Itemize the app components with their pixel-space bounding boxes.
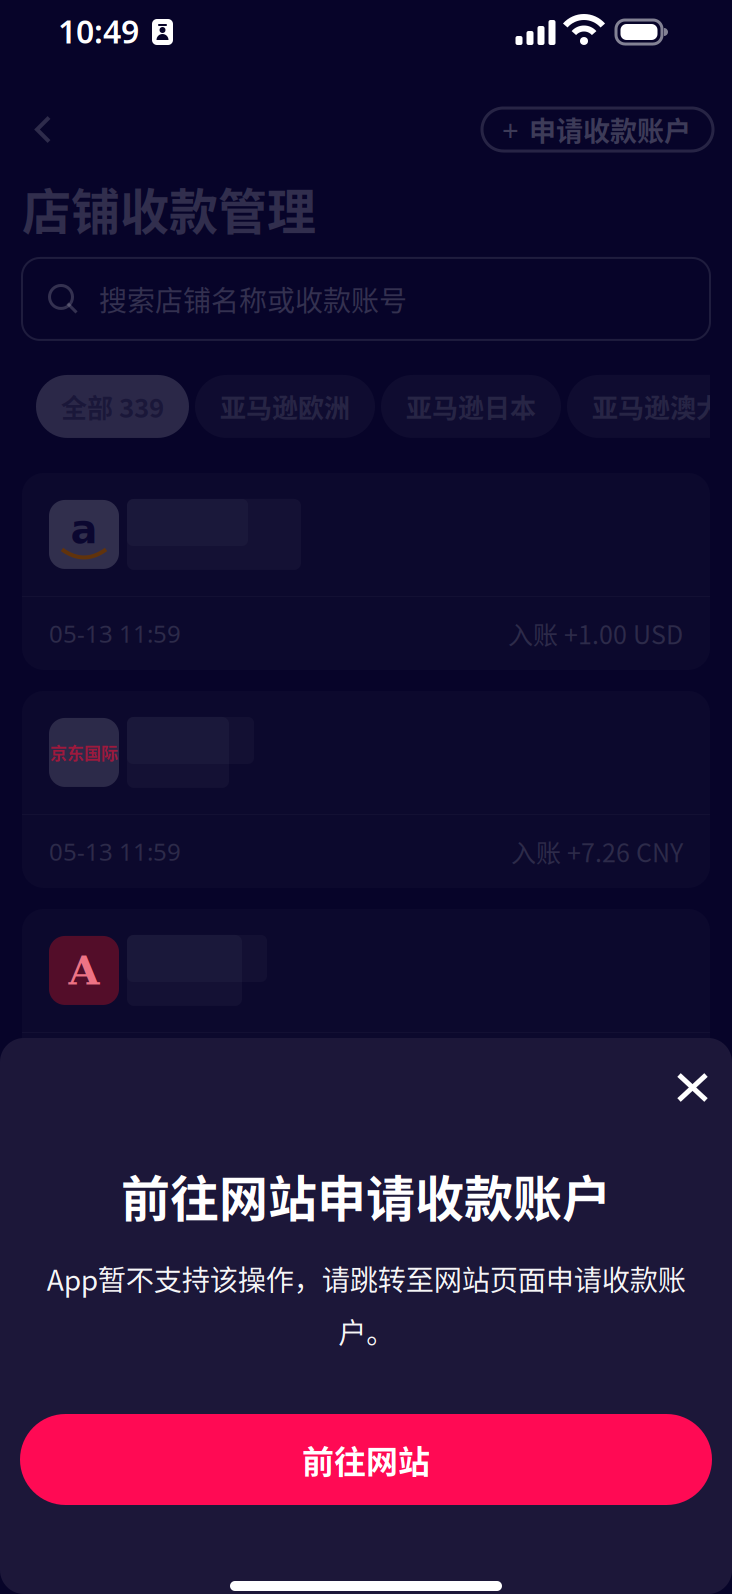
button[interactable]: 前往网站: [20, 1414, 712, 1505]
staticText: 亚马逊日本: [406, 388, 536, 425]
staticText: 入账 +7.26 CNY: [511, 833, 683, 870]
staticText: 前往网站申请收款账户: [121, 1160, 611, 1231]
button[interactable]: 亚马逊澳大利亚: [567, 375, 732, 438]
staticText: 搜索店铺名称或收款账号: [99, 279, 407, 319]
staticText: 05-13 11:59: [49, 617, 181, 649]
staticText: 前往网站: [302, 1436, 430, 1483]
staticText: 全部 339: [61, 388, 164, 425]
staticText: 入账 +0.32 EUR: [509, 1051, 683, 1088]
button[interactable]: Close: [661, 1059, 724, 1116]
staticText: a: [70, 506, 97, 553]
button[interactable]: 亚马逊欧洲: [195, 375, 375, 438]
staticText: 申请收款账户: [529, 110, 691, 149]
staticText: 店铺收款管理: [22, 173, 316, 244]
staticText: 入账 +1.00 USD: [508, 615, 683, 652]
button[interactable]: Back: [22, 108, 68, 151]
button[interactable]: 全部 339: [36, 375, 189, 438]
staticText: 亚马逊欧洲: [220, 388, 350, 425]
staticText: +: [502, 110, 519, 149]
button[interactable]: +: [482, 108, 713, 151]
staticText: 10:49: [58, 10, 139, 52]
staticText: 05-13 11:59: [49, 835, 181, 867]
staticText: 亚马逊澳大利亚: [592, 388, 732, 425]
staticText: 京东国际: [50, 740, 118, 765]
staticText: App暂不支持该操作，请跳转至网站页面申请收款账户。: [46, 1258, 685, 1352]
button[interactable]: 亚马逊日本: [381, 375, 561, 438]
staticText: A: [68, 947, 99, 994]
